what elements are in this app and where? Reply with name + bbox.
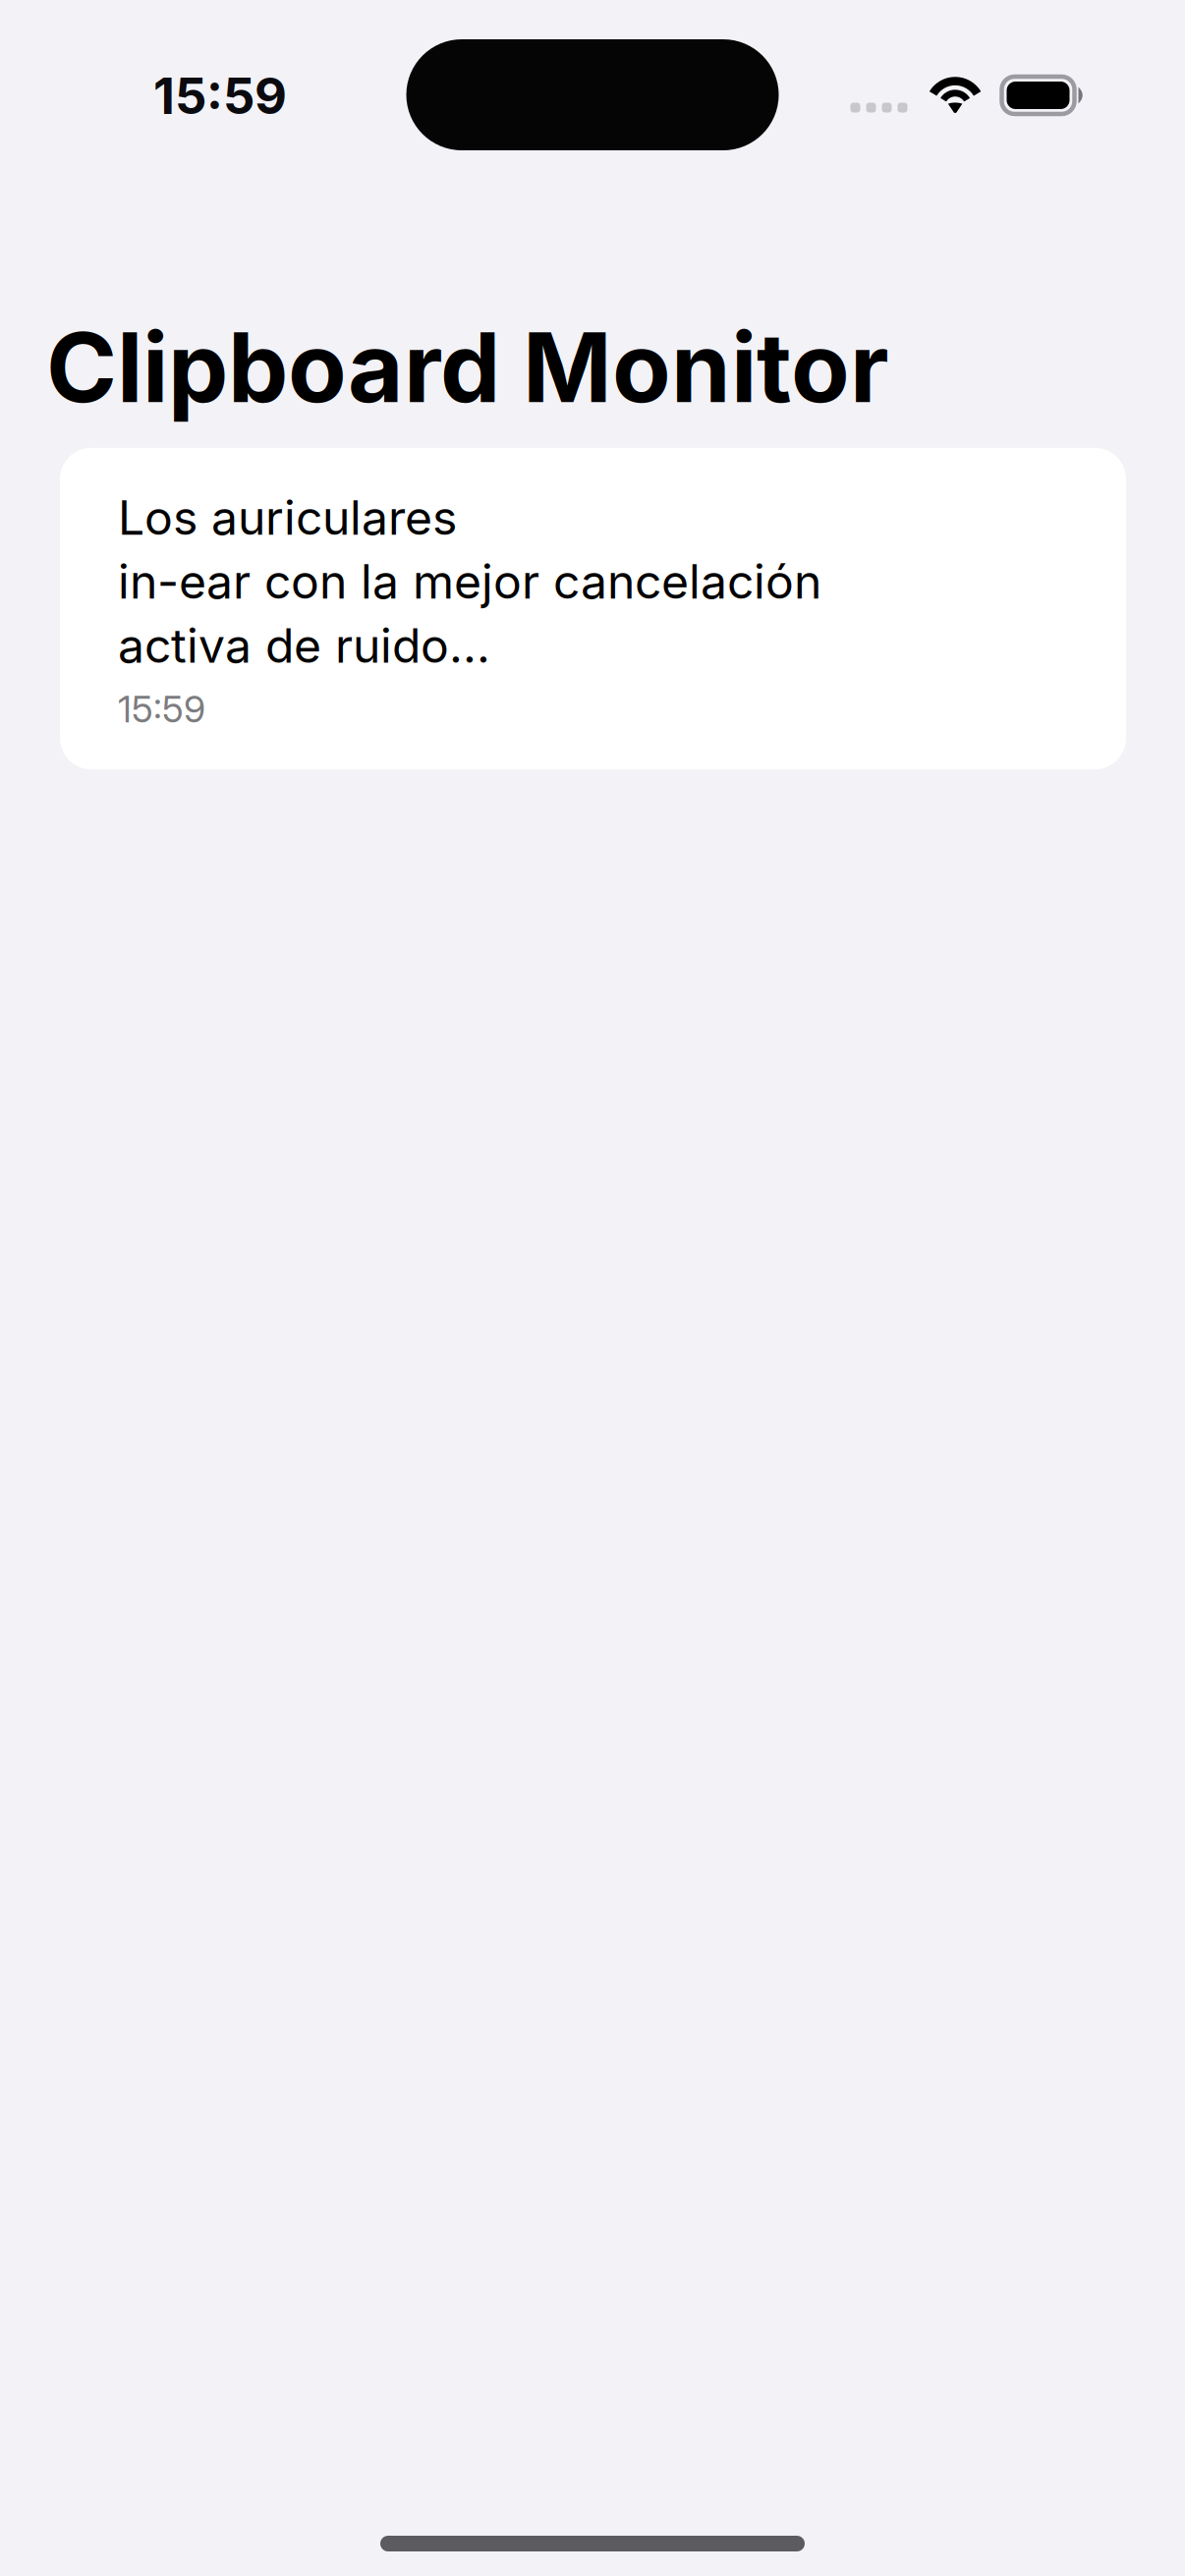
staticText: Los auriculares bbox=[118, 489, 457, 546]
staticText: in-ear con la mejor cancelación bbox=[118, 553, 821, 610]
button[interactable]: Los auriculares bbox=[60, 448, 1126, 769]
staticText: 15:59 bbox=[153, 66, 287, 126]
staticText: activa de ruido... bbox=[118, 617, 490, 674]
staticText: 15:59 bbox=[118, 687, 205, 731]
staticText: Clipboard Monitor bbox=[46, 309, 889, 425]
